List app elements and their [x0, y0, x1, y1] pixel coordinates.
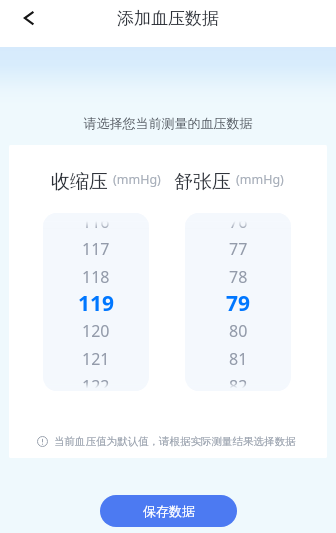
button[interactable]: 76	[185, 213, 291, 233]
staticText: 122	[82, 375, 110, 391]
staticText: 116	[82, 213, 110, 233]
button[interactable]: 77	[185, 238, 291, 260]
button[interactable]: 121	[43, 348, 149, 370]
button[interactable]: Back	[7, 0, 51, 40]
staticText: 78	[229, 266, 248, 288]
staticText: 82	[229, 375, 248, 391]
staticText: 76	[229, 213, 248, 233]
staticText: 请选择您当前测量的血压数据	[0, 115, 336, 131]
staticText: 收缩压	[51, 170, 108, 194]
staticText: 保存数据	[143, 503, 195, 519]
staticText: 120	[82, 320, 110, 342]
staticText: 77	[229, 238, 248, 260]
staticText: 79	[226, 289, 251, 315]
staticText: 119	[78, 289, 115, 315]
button[interactable]: 119	[43, 289, 149, 315]
button[interactable]: 122	[43, 375, 149, 391]
button[interactable]: 118	[43, 266, 149, 288]
button[interactable]: 81	[185, 348, 291, 370]
button[interactable]: 80	[185, 320, 291, 342]
staticText: 81	[229, 348, 248, 370]
staticText: 121	[82, 348, 110, 370]
staticText: (mmHg)	[236, 171, 284, 188]
button[interactable]: 79	[185, 289, 291, 315]
staticText: 80	[229, 320, 248, 342]
button[interactable]: 116	[43, 213, 149, 233]
button[interactable]: 82	[185, 375, 291, 391]
button[interactable]: 保存数据	[100, 495, 237, 527]
staticText: 117	[82, 238, 110, 260]
staticText: (mmHg)	[113, 171, 161, 188]
button[interactable]: 120	[43, 320, 149, 342]
staticText: 舒张压	[174, 170, 231, 194]
staticText: 当前血压值为默认值，请根据实际测量结果选择数据	[54, 435, 296, 448]
staticText: 118	[82, 266, 110, 288]
staticText: 添加血压数据	[117, 8, 219, 29]
button[interactable]: 78	[185, 266, 291, 288]
button[interactable]: 117	[43, 238, 149, 260]
